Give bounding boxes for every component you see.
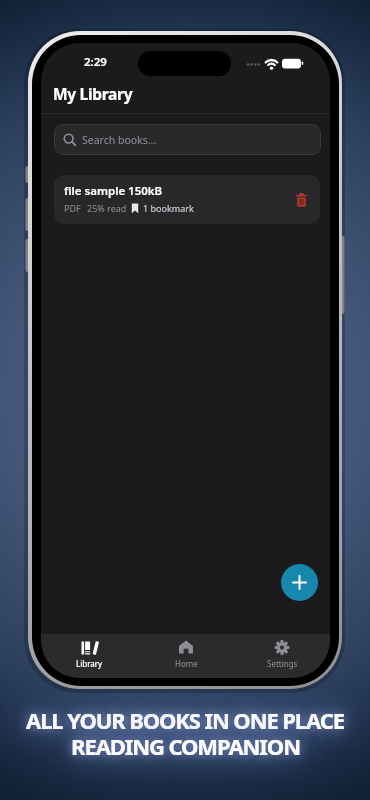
button[interactable]: Home (138, 634, 234, 678)
staticText: READING COMPANION (71, 731, 300, 761)
staticText: 2:29 (84, 54, 107, 70)
button[interactable] (281, 564, 318, 601)
button[interactable]: Library (41, 634, 138, 678)
staticText: Library (76, 658, 103, 669)
staticText: 1 bookmark (143, 202, 194, 214)
staticText: My Library (53, 83, 133, 104)
staticText: ALL YOUR BOOKS IN ONE PLACE (26, 705, 344, 735)
button[interactable]: Search books... (54, 124, 321, 155)
staticText: READING COMPANION (71, 731, 300, 761)
staticText: PDF (64, 202, 81, 214)
button[interactable]: Settings (234, 634, 330, 678)
staticText: Search books... (82, 133, 157, 147)
staticText: Home (175, 658, 198, 669)
staticText: file sample 150kB (64, 183, 163, 199)
staticText: 25% read (87, 202, 127, 214)
staticText: ALL YOUR BOOKS IN ONE PLACE (26, 705, 344, 735)
staticText: Settings (267, 658, 298, 669)
button[interactable] (296, 193, 307, 207)
button[interactable]: file sample 150kB (54, 175, 320, 224)
